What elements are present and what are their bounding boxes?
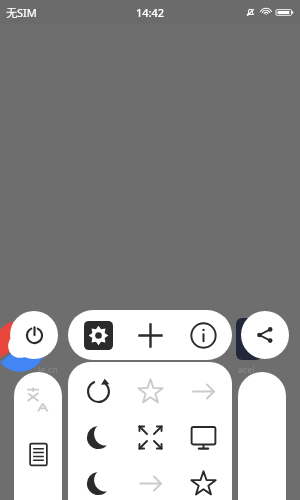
button[interactable]: Page info	[180, 312, 226, 358]
button[interactable]: Power	[10, 311, 58, 359]
button[interactable]: Dark mode	[75, 414, 121, 460]
button[interactable]: Settings	[75, 312, 121, 358]
button[interactable]: Desktop site	[180, 414, 226, 460]
staticText: 14:42	[136, 5, 165, 20]
staticText: acel	[238, 363, 255, 375]
staticText: 无SIM	[6, 5, 37, 20]
staticText: le.cn	[38, 363, 58, 375]
button[interactable]: Translate	[16, 378, 60, 422]
button[interactable]: Bookmark	[127, 368, 173, 414]
button[interactable]: Forward	[180, 368, 226, 414]
button[interactable]: More options	[238, 372, 286, 500]
button[interactable]: Full screen	[127, 414, 173, 460]
button[interactable]: Share	[241, 311, 289, 359]
button[interactable]: Downloads	[75, 460, 121, 500]
button[interactable]: Add shortcut	[180, 460, 226, 500]
button[interactable]: Reading list	[16, 432, 60, 476]
button[interactable]: New tab	[127, 312, 173, 358]
button[interactable]: Reload	[75, 368, 121, 414]
button[interactable]: History	[127, 460, 173, 500]
